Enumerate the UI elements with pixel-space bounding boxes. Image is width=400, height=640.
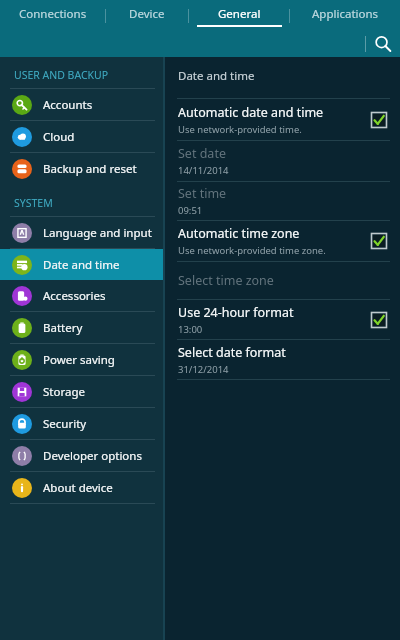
staticText: Date and time — [178, 68, 255, 84]
staticText: 09:51 — [178, 204, 203, 217]
button[interactable]: Toggle — [370, 232, 388, 250]
button[interactable]: Device — [106, 0, 188, 31]
staticText: Use network-provided time. — [178, 123, 302, 136]
button[interactable]: Developer options — [0, 440, 163, 471]
button[interactable]: Accessories — [0, 280, 163, 311]
button[interactable]: Date and time — [0, 249, 163, 280]
button[interactable]: Applications — [290, 0, 400, 31]
staticText: Language and input — [43, 225, 152, 241]
staticText: Select date format — [178, 344, 286, 361]
staticText: Use network-provided time zone. — [178, 244, 326, 257]
staticText: Use 24-hour format — [178, 304, 294, 321]
staticText: About device — [43, 480, 113, 496]
staticText: Select time zone — [178, 272, 274, 289]
staticText: Backup and reset — [43, 161, 137, 177]
button[interactable]: Toggle — [370, 111, 388, 129]
button[interactable]: Toggle — [370, 311, 388, 329]
button[interactable]: Connections — [0, 0, 105, 31]
button[interactable]: Accounts — [0, 89, 163, 120]
button[interactable]: Cloud — [0, 121, 163, 152]
button[interactable]: Security — [0, 408, 163, 439]
button[interactable]: Backup and reset — [0, 153, 163, 184]
staticText: SYSTEM — [14, 196, 53, 210]
staticText: Developer options — [43, 448, 142, 464]
staticText: Set time — [178, 185, 227, 202]
staticText: 14/11/2014 — [178, 164, 229, 177]
button[interactable]: Language and input — [0, 217, 163, 248]
staticText: Device — [129, 6, 165, 22]
staticText: 31/12/2014 — [178, 363, 229, 376]
button[interactable]: Use 24-hour format — [165, 300, 400, 339]
staticText: USER AND BACKUP — [14, 68, 109, 82]
staticText: Accessories — [43, 288, 106, 304]
staticText: Connections — [19, 6, 87, 22]
staticText: Cloud — [43, 129, 75, 145]
button[interactable]: Search — [366, 31, 400, 57]
button[interactable]: Automatic date and time — [165, 99, 400, 140]
button[interactable]: Select date format — [165, 340, 400, 379]
button[interactable]: Set date — [165, 141, 400, 181]
staticText: Automatic time zone — [178, 225, 300, 242]
button[interactable]: Power saving — [0, 344, 163, 375]
button[interactable]: Select time zone — [165, 262, 400, 299]
staticText: Storage — [43, 384, 85, 400]
staticText: 13:00 — [178, 323, 203, 336]
staticText: Power saving — [43, 352, 115, 368]
staticText: General — [218, 6, 261, 22]
staticText: Battery — [43, 320, 83, 336]
staticText: Applications — [312, 6, 379, 22]
staticText: Date and time — [43, 257, 120, 273]
staticText: Set date — [178, 145, 226, 162]
button[interactable]: General — [189, 0, 289, 31]
button[interactable]: Automatic time zone — [165, 221, 400, 261]
staticText: Automatic date and time — [178, 104, 324, 121]
button[interactable]: About device — [0, 472, 163, 503]
staticText: Security — [43, 416, 87, 432]
button[interactable]: Battery — [0, 312, 163, 343]
staticText: Accounts — [43, 97, 93, 113]
button[interactable]: Set time — [165, 182, 400, 220]
button[interactable]: Storage — [0, 376, 163, 407]
